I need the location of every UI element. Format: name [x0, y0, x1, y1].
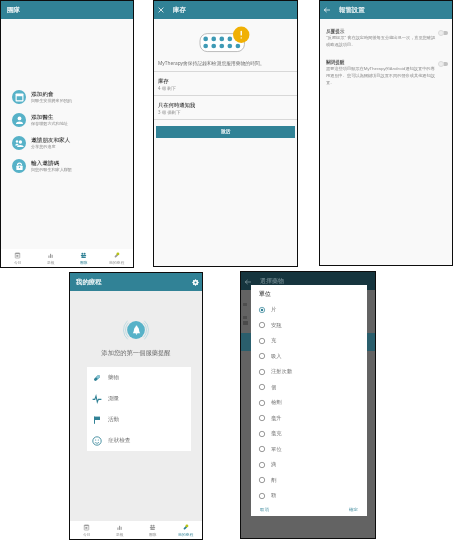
button[interactable]: 片 [251, 302, 367, 317]
staticText: 滴 [271, 461, 277, 468]
staticText: 輸入邀請碼 [31, 160, 59, 167]
staticText: 激活 [221, 129, 231, 135]
button[interactable]: 添加醫生 [1, 108, 133, 131]
button[interactable]: 只在何時通知我 [154, 96, 297, 119]
staticText: 庫存 [173, 6, 186, 14]
button[interactable]: 個 [251, 379, 367, 395]
button[interactable]: 今日 [1, 249, 34, 267]
staticText: 劑 [271, 477, 277, 484]
staticText: 泉報 [116, 532, 124, 537]
button[interactable]: 症狀檢查 [87, 430, 191, 451]
button[interactable]: Back [241, 275, 254, 288]
staticText: 注射次數 [271, 368, 293, 375]
staticText: 報警設置 [339, 6, 365, 14]
staticText: 分享您的進度 [31, 144, 56, 149]
staticText: 選擇藥物 [260, 277, 284, 285]
staticText: 活動 [108, 416, 120, 423]
button[interactable]: 今日 [70, 521, 103, 539]
staticText: 今日 [83, 532, 91, 537]
button[interactable]: Toggle [438, 30, 449, 36]
button[interactable]: 輸入邀請碼 [1, 154, 133, 177]
staticText: 克 [271, 337, 277, 344]
button[interactable]: 藥物 [87, 367, 191, 388]
button[interactable]: 邀請朋友和家人 [1, 131, 133, 154]
button[interactable]: 毫克 [251, 426, 367, 441]
staticText: 單位 [259, 290, 271, 297]
button[interactable]: 滴 [251, 457, 367, 472]
staticText: 我的療程 [178, 532, 194, 537]
button[interactable]: 確定 [347, 505, 360, 515]
staticText: 與醫生安排將來的預約 [31, 98, 72, 103]
staticText: 反覆提示 [326, 29, 345, 35]
button[interactable]: 活動 [87, 409, 191, 430]
button[interactable]: 泉報 [103, 521, 136, 539]
button[interactable]: 我的療程 [100, 249, 133, 267]
button[interactable]: 檢劑 [251, 395, 367, 410]
staticText: 團隊 [80, 260, 88, 265]
button[interactable]: 庫存 [154, 72, 297, 95]
staticText: 添加您的第一個服藥提醒 [70, 349, 202, 357]
button[interactable]: 劑 [251, 472, 367, 488]
staticText: 需要這些項目顯示在MyTherapy的Android通知設置中的專用通別中。您可… [326, 66, 437, 85]
staticText: 片 [271, 306, 277, 313]
button[interactable]: 安瓶 [251, 317, 367, 333]
staticText: 邀請朋友和家人 [31, 137, 71, 144]
staticText: 毫升 [271, 415, 282, 422]
button[interactable]: 顆 [251, 488, 367, 503]
staticText: 泉報 [47, 260, 55, 265]
button[interactable]: 我的療程 [169, 521, 202, 539]
button[interactable]: 團隊 [67, 249, 100, 267]
button[interactable]: 克 [251, 333, 367, 348]
button[interactable]: 關閉提醒 [320, 60, 452, 85]
button[interactable]: 取消 [258, 505, 271, 515]
staticText: 3 個 保剩下 [158, 109, 181, 115]
staticText: 安瓶 [271, 322, 282, 329]
staticText: 個 [271, 384, 277, 391]
staticText: 團隊 [149, 532, 157, 537]
button[interactable]: 團隊 [136, 521, 169, 539]
button[interactable]: 激活 [156, 126, 295, 138]
button[interactable]: Toggle [438, 61, 449, 67]
staticText: 我的療程 [76, 278, 102, 286]
staticText: 我的療程 [109, 260, 125, 265]
staticText: 庫存 [158, 78, 169, 85]
staticText: 症狀檢查 [108, 437, 131, 444]
button[interactable]: 測量 [87, 388, 191, 409]
button[interactable]: 吸入 [251, 348, 367, 364]
staticText: "反覆提示" 會在設定時間後每五分鐘出現一次，直至您確認或略過該項目。 [326, 35, 437, 47]
staticText: MyTherapy會保持記錄和檢測您服用藥物的時間。 [158, 60, 265, 67]
button[interactable]: 添加約會 [1, 85, 133, 108]
staticText: 單位 [271, 446, 282, 453]
staticText: 添加醫生 [31, 114, 54, 121]
staticText: 保存聯繫方式和地址 [31, 121, 68, 126]
button[interactable]: 泉報 [34, 249, 67, 267]
button[interactable]: Close [154, 3, 168, 17]
staticText: 4 個 剩下 [158, 85, 176, 91]
button[interactable]: 單位 [251, 441, 367, 457]
staticText: 添加約會 [31, 91, 54, 98]
button[interactable]: Settings [188, 275, 202, 289]
button[interactable]: 反覆提示 [320, 29, 452, 47]
staticText: 關閉提醒 [326, 60, 345, 66]
staticText: 與您的醫生和家人聯繫 [31, 167, 72, 172]
staticText: 顆 [271, 492, 277, 499]
staticText: 毫克 [271, 430, 282, 437]
staticText: 只在何時通知我 [158, 102, 196, 109]
button[interactable]: Back [320, 3, 334, 17]
button[interactable]: 注射次數 [251, 364, 367, 379]
button[interactable]: 毫升 [251, 410, 367, 426]
staticText: 藥物 [108, 374, 120, 381]
staticText: 今日 [14, 260, 22, 265]
staticText: 檢劑 [271, 399, 282, 406]
staticText: 測量 [108, 395, 120, 402]
staticText: 團隊 [7, 6, 20, 14]
staticText: 吸入 [271, 353, 282, 360]
